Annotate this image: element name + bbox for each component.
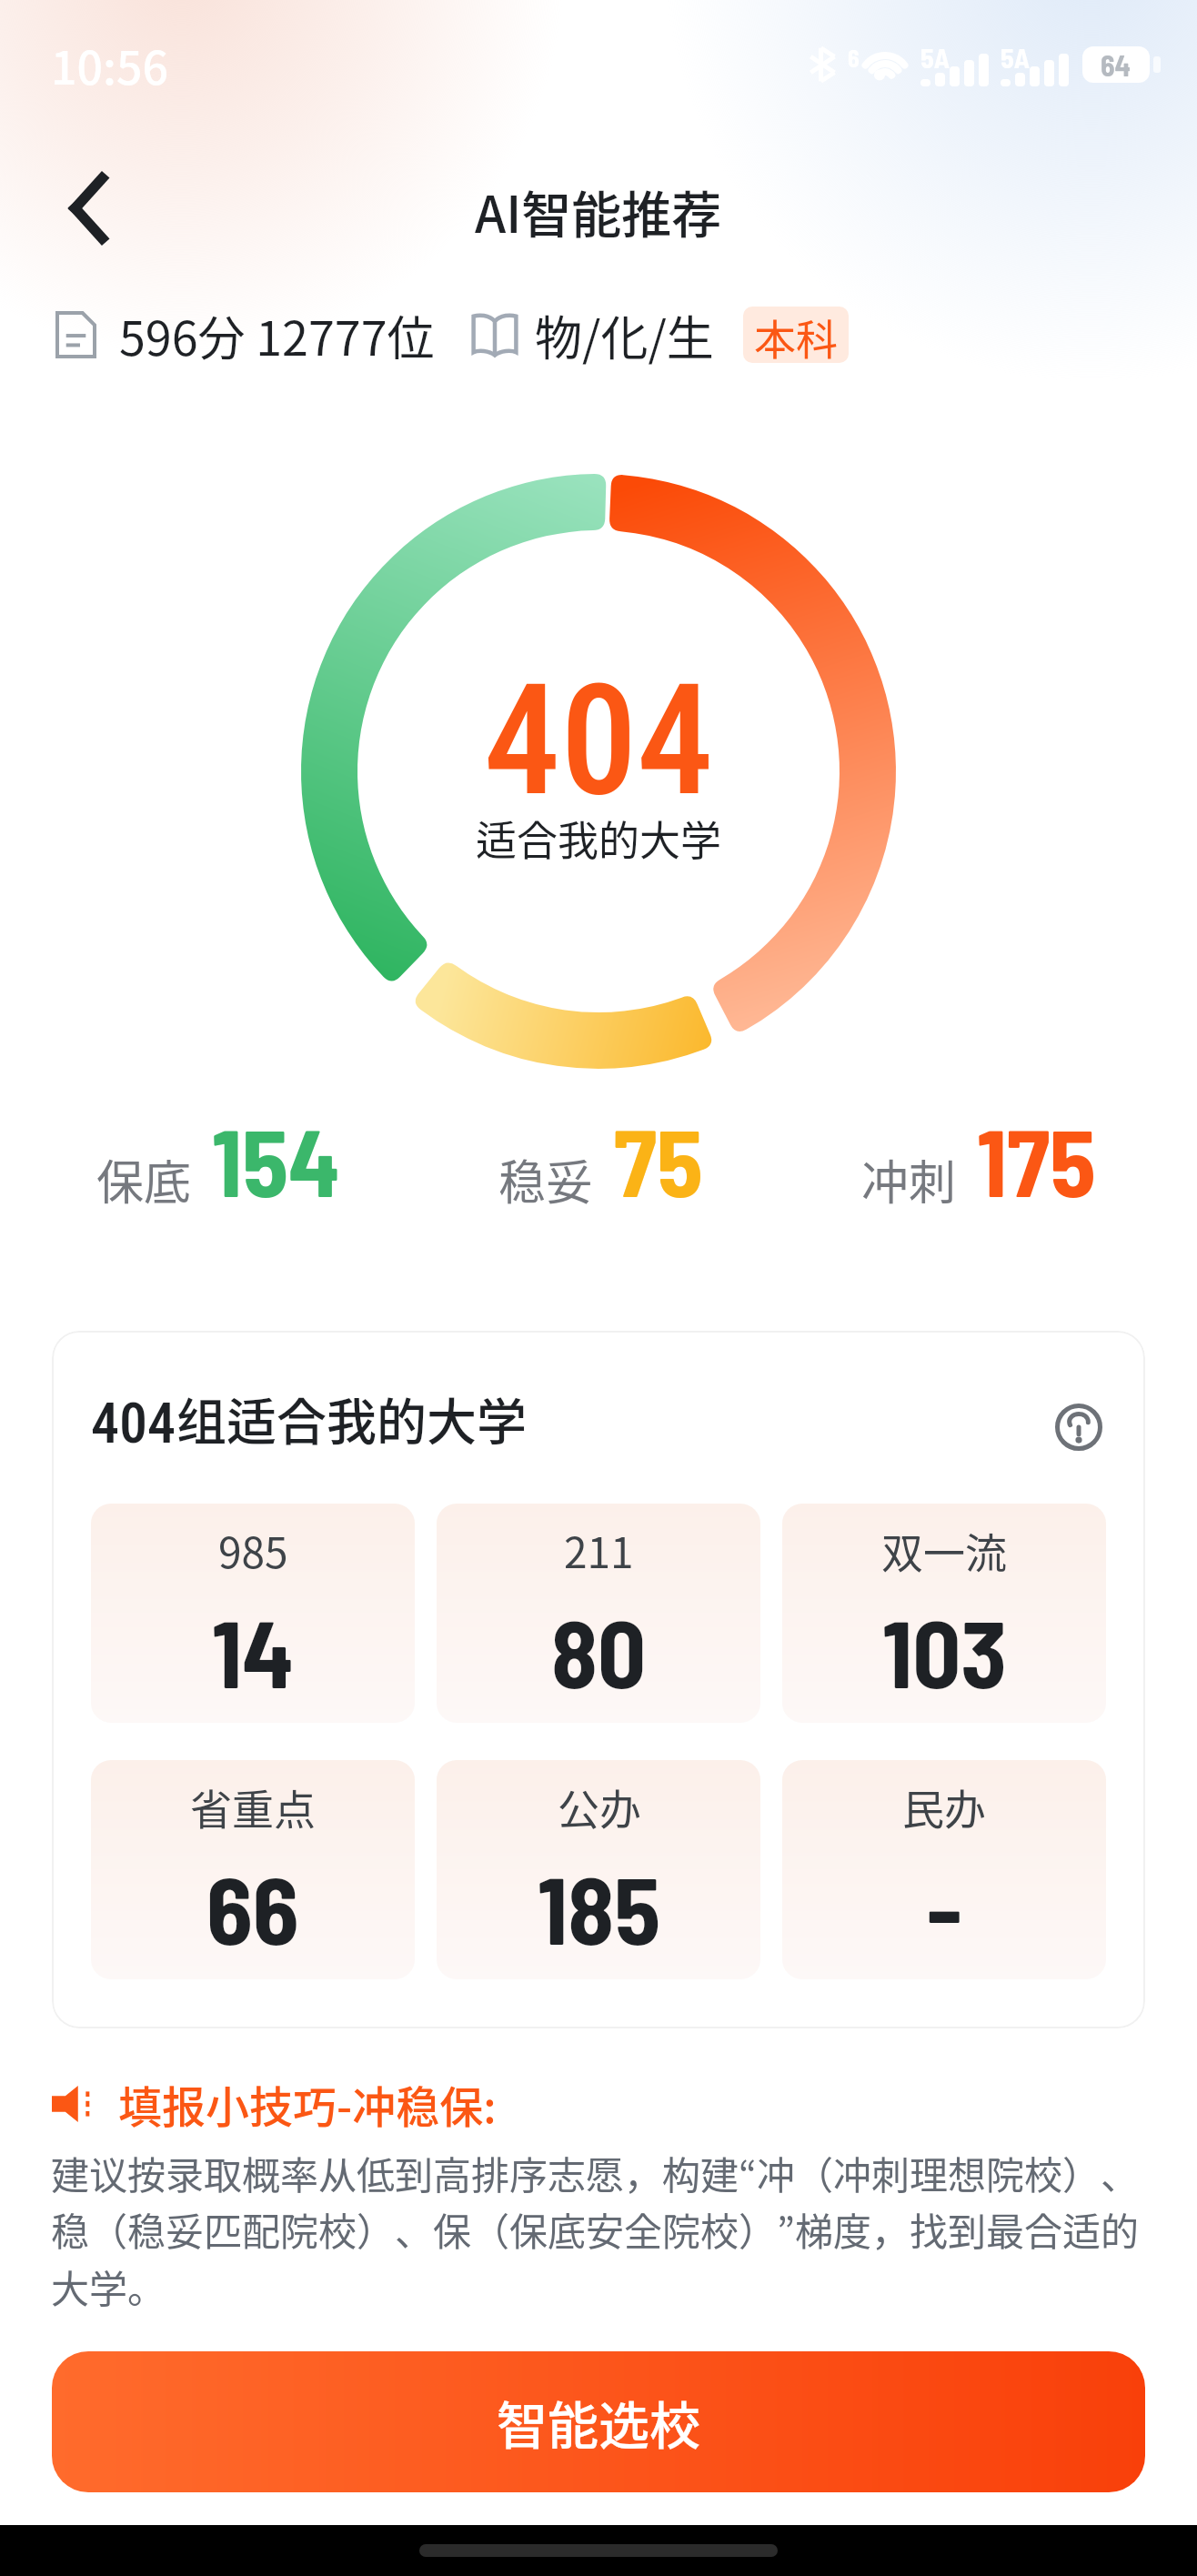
staticText: 66 xyxy=(206,1850,299,1964)
staticText: 154 xyxy=(212,1102,340,1216)
staticText: 80 xyxy=(551,1594,647,1707)
staticText: 404 xyxy=(91,1390,176,1456)
staticText: 冲刺 xyxy=(861,1145,957,1213)
staticText: 民办 xyxy=(902,1776,986,1837)
staticText: - xyxy=(927,1850,962,1964)
staticText: 10:56 xyxy=(51,32,168,97)
staticText: 公办 xyxy=(558,1776,641,1837)
staticText: 建议按录取概率从低到高排序志愿，构建“冲（冲刺理想院校）、稳（稳妥匹配院校）、保… xyxy=(51,2145,1172,2315)
staticText: 985 xyxy=(218,1520,288,1581)
button[interactable]: 211 xyxy=(437,1504,760,1723)
staticText: 75 xyxy=(614,1102,703,1216)
staticText: 175 xyxy=(977,1102,1096,1216)
staticText: 64 xyxy=(1101,47,1132,82)
staticText: 103 xyxy=(882,1594,1007,1707)
button[interactable]: 省重点 xyxy=(91,1760,415,1979)
button[interactable]: 985 xyxy=(91,1504,415,1723)
staticText: 保底 xyxy=(96,1145,192,1213)
staticText: 智能选校 xyxy=(497,2385,700,2459)
staticText: 404 xyxy=(484,651,714,830)
staticText: 596分 12777位 xyxy=(119,301,435,369)
staticText: 6 xyxy=(848,44,860,72)
staticText: 双一流 xyxy=(881,1520,1007,1581)
button[interactable]: 公办 xyxy=(437,1760,760,1979)
staticText: 适合我的大学 xyxy=(476,809,722,868)
staticText: 211 xyxy=(564,1520,634,1581)
staticText: 5A xyxy=(920,41,950,74)
button[interactable]: Help xyxy=(1051,1400,1106,1454)
staticText: 稳妥 xyxy=(498,1145,594,1213)
button[interactable]: 民办 xyxy=(782,1760,1106,1979)
button[interactable]: 双一流 xyxy=(782,1504,1106,1723)
button[interactable]: Back xyxy=(38,158,138,258)
staticText: 省重点 xyxy=(190,1776,316,1837)
staticText: 185 xyxy=(538,1850,660,1964)
staticText: 物/化/生 xyxy=(535,301,714,369)
staticText: 14 xyxy=(212,1594,294,1707)
staticText: 5A xyxy=(1001,41,1030,74)
button[interactable]: 智能选校 xyxy=(52,2351,1145,2492)
staticText: 组适合我的大学 xyxy=(176,1382,528,1454)
staticText: AI智能推荐 xyxy=(475,175,722,247)
staticText: 填报小技巧-冲稳保: xyxy=(118,2072,497,2136)
staticText: 本科 xyxy=(754,307,838,363)
